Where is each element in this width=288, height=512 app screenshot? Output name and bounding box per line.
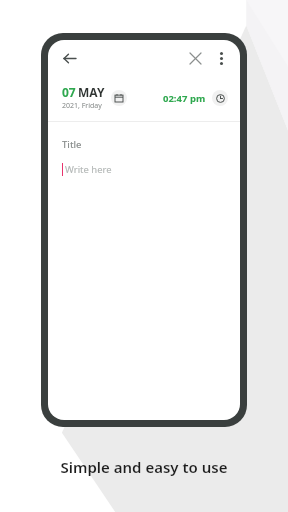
staticText: MAY — [78, 84, 105, 100]
button[interactable]: 02:47 pm — [163, 90, 228, 106]
button[interactable]: More options — [208, 45, 234, 71]
staticText: 02:47 pm — [163, 92, 206, 105]
button[interactable]: Write here — [62, 163, 240, 176]
button[interactable]: Back — [56, 45, 82, 71]
staticText: 07 — [62, 84, 76, 100]
staticText: Simple and easy to use — [0, 457, 288, 477]
staticText: Title — [62, 138, 82, 151]
staticText: 2021, Friday — [62, 101, 102, 111]
button[interactable]: Close — [182, 45, 208, 71]
staticText: Write here — [65, 163, 112, 176]
button[interactable]: 07 — [62, 84, 127, 111]
